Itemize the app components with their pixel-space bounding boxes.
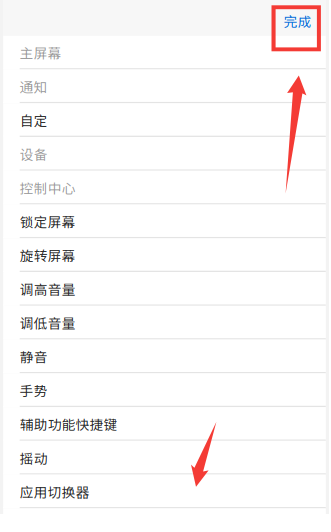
button[interactable]: 辅助功能快捷键 [3,407,326,441]
button[interactable]: 手势 [3,373,326,407]
button[interactable]: 静音 [3,339,326,373]
staticText: 主屏幕 [20,43,62,62]
staticText: 调高音量 [20,279,76,299]
staticText: 通知 [20,76,48,96]
staticText: 应用切换器 [20,482,90,501]
button[interactable]: 自定 [3,103,326,137]
button[interactable]: 主屏幕 [3,36,326,69]
staticText: 完成 [284,11,312,31]
button[interactable]: 调高音量 [3,272,326,306]
staticText: 静音 [20,347,48,366]
button[interactable]: 锁定屏幕 [3,204,326,238]
staticText: 旋转屏幕 [20,245,76,265]
button[interactable]: 旋转屏幕 [3,238,326,272]
button[interactable]: 摇动 [3,441,326,475]
button[interactable]: 完成 [284,0,326,31]
staticText: 摇动 [20,448,48,468]
staticText: 辅助功能快捷键 [20,414,118,434]
button[interactable]: 应用切换器 [3,475,326,508]
staticText: 调低音量 [20,313,76,332]
staticText: 设备 [20,144,48,164]
button[interactable]: 通知 [3,69,326,103]
button[interactable]: 调低音量 [3,306,326,340]
staticText: 自定 [20,110,48,130]
staticText: 控制中心 [20,178,76,197]
staticText: 手势 [20,380,48,400]
staticText: 锁定屏幕 [20,211,76,231]
button[interactable]: 设备 [3,137,326,171]
button[interactable]: 控制中心 [3,171,326,204]
